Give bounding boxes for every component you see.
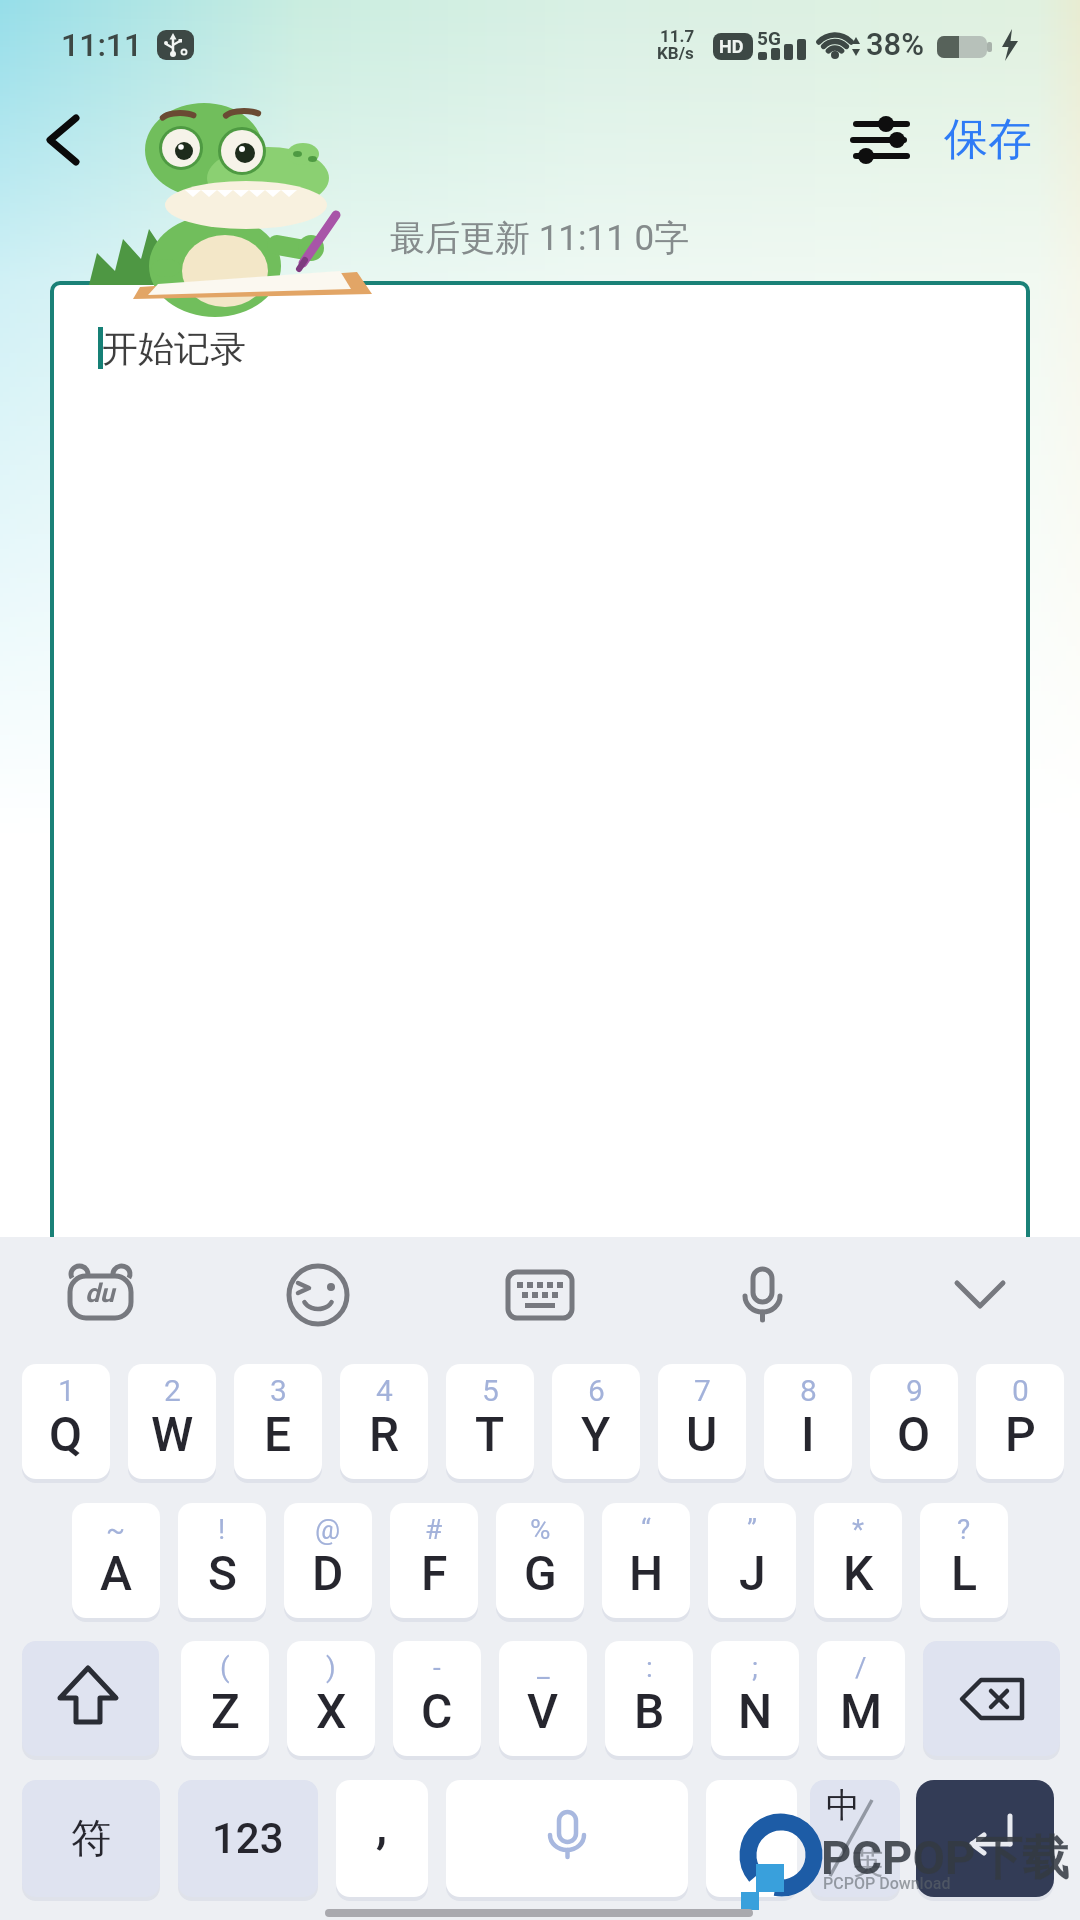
staticText: R <box>369 1406 399 1462</box>
button[interactable] <box>390 1503 478 1618</box>
staticText: 保存 <box>944 112 1032 167</box>
button[interactable]: 保存 <box>944 112 1036 172</box>
staticText: 5 <box>482 1373 499 1408</box>
staticText: F <box>421 1545 448 1601</box>
staticText: / <box>855 1651 867 1684</box>
staticText: H <box>629 1545 664 1601</box>
button[interactable] <box>916 1780 1054 1897</box>
button[interactable] <box>499 1641 587 1756</box>
button[interactable] <box>22 1780 160 1897</box>
button[interactable] <box>72 1503 160 1618</box>
staticText: Q <box>49 1406 83 1462</box>
button[interactable] <box>764 1364 852 1479</box>
staticText: C <box>421 1683 453 1739</box>
staticText: ; <box>752 1651 758 1684</box>
staticText: 123 <box>212 1814 284 1863</box>
button[interactable] <box>717 1253 807 1337</box>
button[interactable] <box>287 1641 375 1756</box>
staticText: 11:11 <box>61 26 143 64</box>
staticText: _ <box>537 1651 550 1684</box>
staticText: K <box>843 1545 874 1601</box>
staticText: 0 <box>1012 1373 1029 1408</box>
button[interactable] <box>706 1780 797 1897</box>
staticText: # <box>425 1513 443 1546</box>
staticText: P <box>1005 1406 1036 1462</box>
staticText: du <box>85 1278 115 1308</box>
button[interactable] <box>923 1641 1060 1756</box>
button[interactable] <box>817 1641 905 1756</box>
button[interactable] <box>336 1780 428 1897</box>
button[interactable] <box>234 1364 322 1479</box>
button[interactable] <box>658 1364 746 1479</box>
button[interactable] <box>920 1503 1008 1618</box>
button[interactable] <box>181 1641 269 1756</box>
staticText: 开始记录 <box>102 326 246 371</box>
button[interactable] <box>340 1364 428 1479</box>
button[interactable] <box>496 1503 584 1618</box>
staticText: B <box>634 1683 665 1739</box>
staticText: T <box>475 1406 505 1462</box>
staticText: PCPOP下载 <box>821 1829 1070 1888</box>
staticText: M <box>840 1683 883 1739</box>
button[interactable] <box>605 1641 693 1756</box>
button[interactable] <box>711 1641 799 1756</box>
staticText: 6 <box>588 1373 605 1408</box>
button[interactable] <box>708 1503 796 1618</box>
staticText: 5G <box>757 27 781 49</box>
staticText: X <box>316 1683 347 1739</box>
button[interactable] <box>284 1503 372 1618</box>
button[interactable] <box>50 281 1030 1249</box>
button[interactable] <box>22 1641 159 1756</box>
button[interactable] <box>870 1364 958 1479</box>
button[interactable] <box>446 1364 534 1479</box>
staticText: 中 <box>826 1784 860 1827</box>
staticText: * <box>852 1513 865 1546</box>
staticText: ~ <box>106 1513 126 1546</box>
staticText: 3 <box>270 1373 287 1408</box>
staticText: 8 <box>800 1373 817 1408</box>
button[interactable] <box>22 1364 110 1479</box>
button[interactable] <box>35 105 95 175</box>
staticText: ) <box>326 1651 336 1684</box>
staticText: : <box>646 1651 653 1684</box>
staticText: ? <box>957 1513 971 1546</box>
button[interactable] <box>552 1364 640 1479</box>
button[interactable] <box>840 103 922 175</box>
staticText: 最后更新 11:11 0字 <box>390 216 690 260</box>
staticText: “ <box>641 1513 651 1546</box>
button[interactable] <box>178 1780 318 1897</box>
button[interactable] <box>810 1780 900 1897</box>
staticText: W <box>151 1406 194 1462</box>
staticText: E <box>264 1406 292 1462</box>
staticText: I <box>801 1406 815 1462</box>
staticText: D <box>312 1545 344 1601</box>
button[interactable] <box>495 1253 585 1337</box>
staticText: 1 <box>58 1373 75 1408</box>
staticText: N <box>738 1683 773 1739</box>
button[interactable] <box>976 1364 1064 1479</box>
staticText: S <box>208 1545 237 1601</box>
button[interactable] <box>446 1780 688 1897</box>
button[interactable] <box>393 1641 481 1756</box>
staticText: 符 <box>71 1813 111 1863</box>
staticText: - <box>433 1651 441 1684</box>
staticText: KB/s <box>657 43 694 63</box>
staticText: 英 <box>853 1844 883 1882</box>
staticText: ( <box>220 1651 230 1684</box>
staticText: 4 <box>376 1373 393 1408</box>
staticText: A <box>100 1545 132 1601</box>
button[interactable] <box>55 1253 145 1337</box>
button[interactable] <box>128 1364 216 1479</box>
button[interactable] <box>935 1253 1025 1337</box>
staticText: 9 <box>906 1373 923 1408</box>
staticText: 7 <box>694 1373 711 1408</box>
staticText: V <box>527 1683 559 1739</box>
button[interactable] <box>273 1253 363 1337</box>
staticText: J <box>739 1545 766 1601</box>
staticText: G <box>524 1545 557 1601</box>
staticText: , <box>376 1797 388 1856</box>
button[interactable] <box>602 1503 690 1618</box>
button[interactable] <box>814 1503 902 1618</box>
staticText: HD <box>719 36 744 57</box>
button[interactable] <box>178 1503 266 1618</box>
